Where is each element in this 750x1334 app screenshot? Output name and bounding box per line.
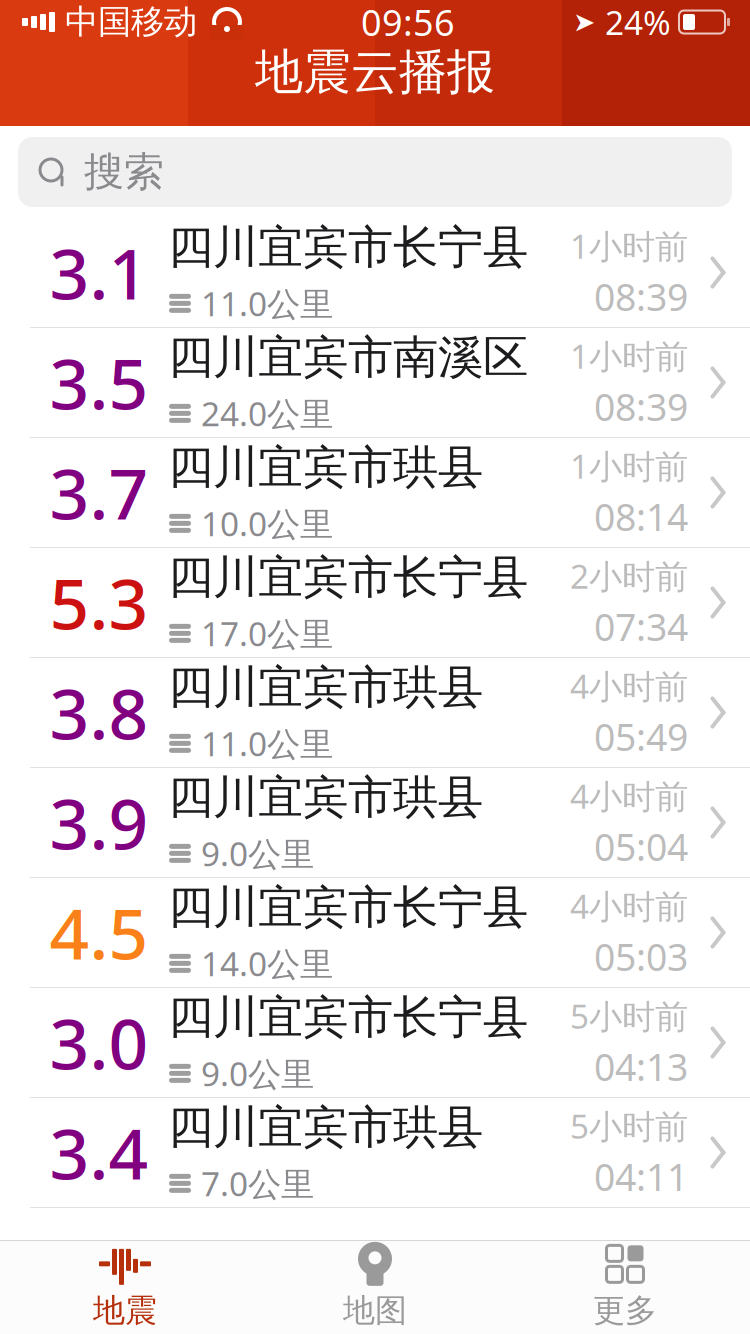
staticText: 3.9	[49, 776, 148, 869]
staticText: 05:04	[594, 822, 688, 871]
button[interactable]: 更多	[500, 1241, 750, 1334]
staticText: 3.5	[49, 336, 148, 429]
staticText: 四川宜宾市珙县	[168, 1099, 483, 1155]
button[interactable]: 3.9	[0, 768, 750, 878]
staticText: 1小时前	[570, 334, 688, 378]
staticText: 9.0公里	[201, 1051, 314, 1095]
staticText: 3.4	[49, 1106, 148, 1199]
staticText: 四川宜宾市珙县	[168, 659, 483, 715]
button[interactable]: 3.4	[0, 1098, 750, 1208]
staticText: 3.7	[49, 446, 148, 539]
staticText: 11.0公里	[201, 281, 333, 325]
button[interactable]: 5.3	[0, 548, 750, 658]
staticText: 07:34	[594, 602, 688, 651]
staticText: 四川宜宾市珙县	[168, 769, 483, 825]
staticText: 四川宜宾市长宁县	[168, 989, 528, 1045]
staticText: 地震	[93, 1291, 157, 1330]
staticText: 4小时前	[570, 664, 688, 708]
staticText: 05:03	[594, 932, 688, 981]
staticText: 1小时前	[570, 224, 688, 268]
staticText: 更多	[593, 1291, 657, 1330]
staticText: 04:11	[594, 1152, 688, 1201]
button[interactable]: 3.5	[0, 328, 750, 438]
staticText: 3.8	[49, 666, 148, 759]
staticText: 四川宜宾市长宁县	[168, 219, 528, 275]
staticText: 17.0公里	[201, 611, 333, 655]
button[interactable]: 3.0	[0, 988, 750, 1098]
staticText: 11.0公里	[201, 721, 333, 765]
staticText: 5小时前	[570, 1104, 688, 1148]
button[interactable]: 4.5	[0, 878, 750, 988]
staticText: 5小时前	[570, 994, 688, 1038]
staticText: 1小时前	[570, 444, 688, 488]
staticText: 地震云播报	[255, 42, 495, 101]
staticText: 四川宜宾市长宁县	[168, 879, 528, 935]
button[interactable]: 3.7	[0, 438, 750, 548]
staticText: 中国移动	[65, 1, 197, 42]
button[interactable]: 地震	[0, 1241, 250, 1334]
staticText: 9.0公里	[201, 831, 314, 875]
staticText: 08:39	[594, 382, 688, 431]
staticText: 搜索	[84, 147, 164, 196]
staticText: 24.0公里	[201, 391, 333, 435]
staticText: 10.0公里	[201, 501, 333, 545]
staticText: 4.5	[49, 886, 148, 979]
staticText: 5.3	[49, 556, 148, 649]
staticText: 四川宜宾市珙县	[168, 439, 483, 495]
staticText: 09:56	[361, 0, 455, 46]
button[interactable]: 3.1	[0, 218, 750, 328]
button[interactable]: 搜索	[18, 137, 732, 207]
staticText: 4小时前	[570, 884, 688, 928]
button[interactable]: 地图	[250, 1241, 500, 1334]
staticText: 05:49	[594, 712, 688, 761]
staticText: 04:13	[594, 1042, 688, 1091]
staticText: 3.0	[49, 996, 148, 1089]
staticText: 08:39	[594, 272, 688, 321]
staticText: 7.0公里	[201, 1161, 314, 1205]
staticText: 14.0公里	[201, 941, 333, 985]
staticText: 地图	[343, 1291, 407, 1330]
staticText: 四川宜宾市南溪区	[168, 329, 528, 385]
staticText: ➤	[573, 7, 595, 37]
staticText: 4小时前	[570, 774, 688, 818]
staticText: 08:14	[594, 492, 688, 541]
staticText: 四川宜宾市长宁县	[168, 549, 528, 605]
staticText: 2小时前	[570, 554, 688, 598]
staticText: 24%	[605, 0, 671, 44]
button[interactable]: 3.8	[0, 658, 750, 768]
staticText: 3.1	[49, 226, 148, 319]
